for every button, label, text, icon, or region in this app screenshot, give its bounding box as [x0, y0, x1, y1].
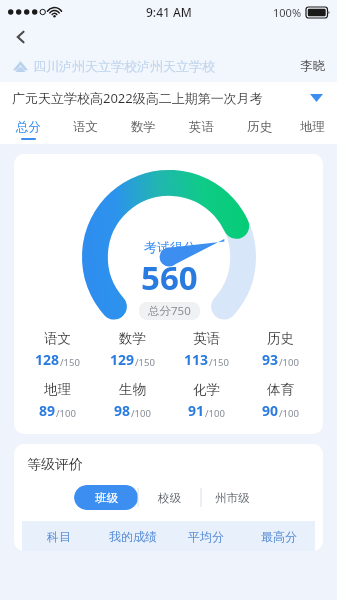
button[interactable]: 州市级 [201, 485, 264, 510]
staticText: /100 [279, 356, 299, 369]
staticText: 最高分 [261, 529, 297, 544]
staticText: 地理 [300, 119, 325, 135]
staticText: 广元天立学校高2022级高二上期第一次月考 [12, 89, 263, 107]
staticText: 生物 [119, 381, 146, 398]
button[interactable]: 语文 [57, 114, 114, 144]
staticText: 数学 [131, 119, 156, 135]
staticText: 9:41 AM [146, 4, 192, 20]
button[interactable]: 地理 [20, 381, 95, 420]
staticText: /100 [56, 407, 76, 420]
button[interactable]: 体育 [243, 381, 317, 420]
button[interactable]: 广元天立学校高2022级高二上期第一次月考 [0, 82, 337, 114]
button[interactable]: 李晓 [300, 58, 325, 74]
staticText: 平均分 [188, 529, 224, 544]
button[interactable]: 语文 [20, 330, 95, 369]
button[interactable]: 历史 [243, 330, 317, 369]
staticText: 英语 [193, 330, 220, 347]
staticText: /150 [135, 356, 155, 369]
staticText: 91 [188, 401, 205, 420]
staticText: 考试得分 [144, 239, 196, 255]
staticText: 90 [262, 401, 279, 420]
staticText: 128 [35, 350, 60, 369]
button[interactable]: 化学 [169, 381, 243, 420]
button[interactable]: 历史 [230, 114, 288, 144]
staticText: 总分 [16, 119, 41, 135]
button[interactable]: 总分 [0, 114, 57, 144]
staticText: 等级评价 [27, 456, 83, 474]
staticText: 校级 [158, 491, 181, 505]
button[interactable]: 英语 [169, 330, 243, 369]
staticText: 语文 [73, 119, 98, 135]
staticText: 州市级 [215, 491, 250, 505]
button[interactable]: 数学 [114, 114, 172, 144]
staticText: 历史 [267, 330, 294, 347]
staticText: /100 [279, 407, 299, 420]
staticText: 113 [184, 350, 209, 369]
button[interactable]: 地理 [288, 114, 337, 144]
staticText: /100 [131, 407, 151, 420]
button[interactable]: 生物 [95, 381, 169, 420]
button[interactable]: 数学 [95, 330, 169, 369]
button[interactable]: 校级 [138, 485, 201, 510]
staticText: 四川泸州天立学校泸州天立学校 [33, 58, 215, 74]
staticText: 班级 [95, 491, 118, 505]
staticText: 体育 [267, 381, 294, 398]
staticText: 科目 [47, 529, 71, 544]
staticText: 总分750 [148, 303, 191, 319]
staticText: 我的成绩 [109, 529, 157, 544]
staticText: 93 [262, 350, 279, 369]
staticText: 英语 [189, 119, 214, 135]
staticText: 语文 [44, 330, 71, 347]
staticText: /150 [209, 356, 229, 369]
staticText: 129 [110, 350, 135, 369]
staticText: 100% [273, 5, 302, 20]
staticText: 数学 [119, 330, 146, 347]
button[interactable]: Back [6, 24, 36, 50]
button[interactable]: 英语 [172, 114, 230, 144]
staticText: 地理 [44, 381, 71, 398]
staticText: 560 [141, 255, 198, 300]
staticText: /150 [60, 356, 80, 369]
staticText: 89 [39, 401, 56, 420]
staticText: 化学 [193, 381, 220, 398]
staticText: 历史 [247, 119, 272, 135]
button[interactable]: 班级 [74, 485, 138, 510]
staticText: /100 [205, 407, 225, 420]
staticText: 98 [114, 401, 131, 420]
